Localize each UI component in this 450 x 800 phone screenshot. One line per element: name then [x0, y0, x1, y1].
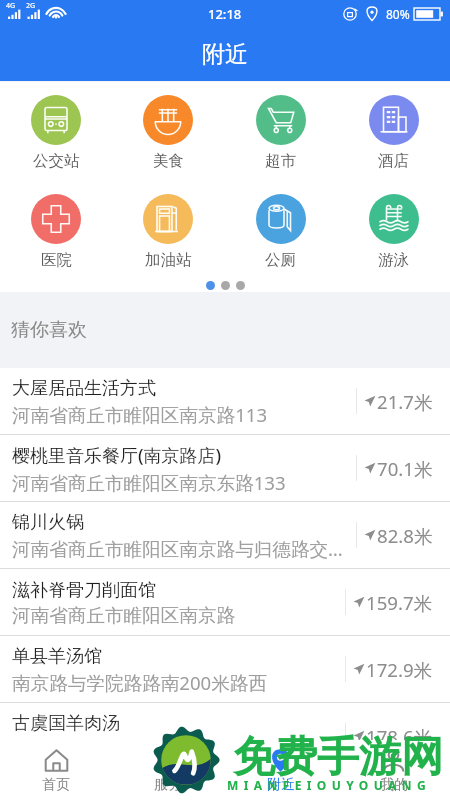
staticText: 猜你喜欢 — [11, 318, 87, 342]
staticText: MIANFEIOUYOUANG — [227, 777, 432, 793]
staticText: 159.7米 — [366, 590, 433, 615]
button[interactable]: 游泳 — [337, 194, 450, 270]
staticText: 古虞国羊肉汤 — [12, 712, 120, 735]
staticText: 附近 — [267, 776, 295, 794]
button[interactable]: 公厕 — [224, 194, 337, 270]
button[interactable]: 大屋居品生活方式 — [0, 368, 450, 435]
staticText: 公厕 — [265, 250, 296, 270]
button[interactable]: 我的 — [337, 740, 450, 800]
button[interactable]: 滋补脊骨刀削面馆 — [0, 569, 450, 636]
button[interactable]: 单县羊汤馆 — [0, 636, 450, 703]
staticText: 免费手游网 — [233, 731, 443, 784]
staticText: 大屋居品生活方式 — [12, 377, 156, 400]
staticText: 82.8米 — [377, 523, 433, 548]
button[interactable]: 公交站 — [0, 95, 112, 171]
staticText: 酒店 — [378, 151, 409, 171]
button[interactable]: 古虞国羊肉汤 — [0, 703, 450, 770]
staticText: 加油站 — [145, 250, 192, 270]
button[interactable]: 附近 — [224, 740, 337, 800]
staticText: 锦川火锅 — [12, 511, 84, 534]
button[interactable]: 樱桃里音乐餐厅(南京路店) — [0, 435, 450, 502]
staticText: 河南省商丘市睢阳区南京东路133 — [12, 470, 286, 495]
button[interactable]: 酒店 — [337, 95, 450, 171]
staticText: 河南省商丘市睢阳区南京路 — [12, 604, 236, 627]
staticText: 服务 — [154, 776, 182, 794]
staticText: 公交站 — [33, 151, 80, 171]
staticText: 21.7米 — [377, 389, 433, 414]
staticText: 游泳 — [378, 250, 409, 270]
staticText: 超市 — [265, 151, 296, 171]
staticText: 河南省商丘市睢阳区… — [12, 737, 195, 762]
staticText: 单县羊汤馆 — [12, 645, 102, 668]
staticText: 医院 — [41, 250, 72, 270]
button[interactable]: 锦川火锅 — [0, 502, 450, 569]
button[interactable]: 医院 — [0, 194, 112, 270]
staticText: 12:18 — [208, 5, 242, 23]
staticText: 70.1米 — [377, 456, 433, 481]
staticText: 美食 — [153, 151, 184, 171]
staticText: 附近 — [202, 40, 248, 69]
button[interactable]: 美食 — [112, 95, 224, 171]
staticText: 樱桃里音乐餐厅(南京路店) — [12, 443, 222, 468]
button[interactable]: 超市 — [224, 95, 337, 171]
staticText: 2G — [26, 1, 36, 11]
staticText: 178.6米 — [366, 724, 433, 749]
staticText: 172.9米 — [366, 657, 433, 682]
staticText: 4G — [6, 1, 16, 11]
button[interactable]: 服务 — [112, 740, 224, 800]
staticText: 80% — [386, 6, 410, 22]
staticText: 滋补脊骨刀削面馆 — [12, 579, 156, 602]
staticText: 河南省商丘市睢阳区南京路113 — [12, 402, 268, 427]
button[interactable]: 首页 — [0, 740, 112, 800]
staticText: 首页 — [42, 776, 70, 794]
button[interactable]: 加油站 — [112, 194, 224, 270]
staticText: 南京路与学院路路南200米路西 — [12, 670, 268, 695]
staticText: 我的 — [380, 776, 408, 794]
staticText: 河南省商丘市睢阳区南京路与归德路交… — [12, 536, 343, 561]
